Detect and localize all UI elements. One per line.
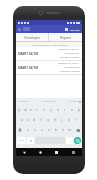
staticText: r	[36, 108, 38, 112]
staticText: z	[27, 128, 29, 132]
staticText: Password: 1506990	[60, 56, 80, 59]
staticText: t	[43, 108, 45, 112]
button[interactable]: GET PRO	[70, 28, 80, 31]
staticText: SMART-1A/1M	[18, 66, 58, 70]
button[interactable]: o	[68, 105, 75, 115]
staticText: ?123	[19, 139, 24, 142]
staticText: b	[55, 128, 57, 132]
button[interactable]: z	[24, 125, 31, 135]
button[interactable]: Backspace	[73, 125, 82, 135]
button[interactable]: w	[22, 105, 28, 115]
staticText: i	[64, 108, 65, 112]
staticText: c	[41, 128, 43, 132]
button[interactable]: b	[52, 125, 59, 135]
button[interactable]: Report	[49, 33, 82, 41]
staticText: s	[27, 118, 29, 122]
button[interactable]: d	[31, 115, 37, 125]
staticText: q	[18, 108, 20, 112]
button[interactable]: h	[51, 115, 58, 125]
staticText: p	[78, 108, 80, 112]
staticText: Username: test	[64, 66, 80, 69]
button[interactable]: Shift	[16, 125, 24, 135]
staticText: February 03, 2019 1	[58, 62, 80, 65]
staticText: x	[34, 128, 36, 132]
staticText: SMART-1A/1M	[18, 52, 58, 56]
button[interactable]: y	[47, 105, 54, 115]
button[interactable]: SMART-1A/1M	[16, 47, 82, 60]
button[interactable]: Back	[16, 148, 32, 156]
button[interactable]: ?123	[17, 137, 26, 144]
button[interactable]: t	[40, 105, 47, 115]
staticText: February 03, 2019 1	[58, 48, 80, 51]
button[interactable]: u	[54, 105, 61, 115]
staticText: k	[68, 118, 70, 122]
button[interactable]: k	[65, 115, 72, 125]
button[interactable]: j	[58, 115, 65, 125]
button[interactable]: x	[31, 125, 38, 135]
button[interactable]: s	[25, 115, 31, 125]
staticText: m	[68, 128, 71, 132]
button[interactable]: Menu	[65, 148, 82, 156]
button[interactable]: l	[72, 115, 79, 125]
button[interactable]	[70, 101, 80, 102]
button[interactable]: q	[16, 105, 22, 115]
staticText: e	[30, 108, 32, 112]
staticText: Tap on Model To Copy Password	[31, 43, 68, 46]
button[interactable]: SMART-1A/1M	[16, 61, 82, 74]
staticText: l	[75, 118, 76, 122]
button[interactable]: Developer	[16, 33, 48, 41]
button[interactable]: c	[38, 125, 45, 135]
staticText: Developer	[24, 35, 41, 40]
staticText: o	[71, 108, 73, 112]
button[interactable]: Recents	[48, 148, 65, 156]
staticText: j	[61, 118, 62, 122]
staticText: h	[54, 118, 56, 122]
staticText: f	[40, 118, 42, 122]
button[interactable]: Search	[74, 137, 81, 144]
staticText: g	[47, 118, 49, 122]
staticText: Report	[60, 35, 71, 40]
staticText: y	[50, 108, 52, 112]
staticText: n	[62, 128, 64, 132]
staticText: v	[48, 128, 50, 132]
staticText: u	[57, 108, 59, 112]
button[interactable]: n	[59, 125, 66, 135]
button[interactable]: v	[45, 125, 52, 135]
button[interactable]: a	[19, 115, 25, 125]
button[interactable]: Emoji	[27, 137, 34, 144]
button[interactable]: p	[75, 105, 82, 115]
button[interactable]: g	[44, 115, 51, 125]
staticText: .	[69, 139, 70, 143]
staticText: Password: 1506990	[60, 70, 80, 73]
button[interactable]: Home	[32, 148, 48, 156]
button[interactable]: i	[61, 105, 68, 115]
staticText: a	[21, 118, 23, 122]
staticText: d	[33, 118, 35, 122]
button[interactable]: f	[37, 115, 44, 125]
button[interactable]: e	[28, 105, 34, 115]
button[interactable]: m	[66, 125, 73, 135]
staticText: w	[24, 108, 27, 112]
staticText: Username: test	[64, 52, 80, 55]
button[interactable]: r	[34, 105, 40, 115]
